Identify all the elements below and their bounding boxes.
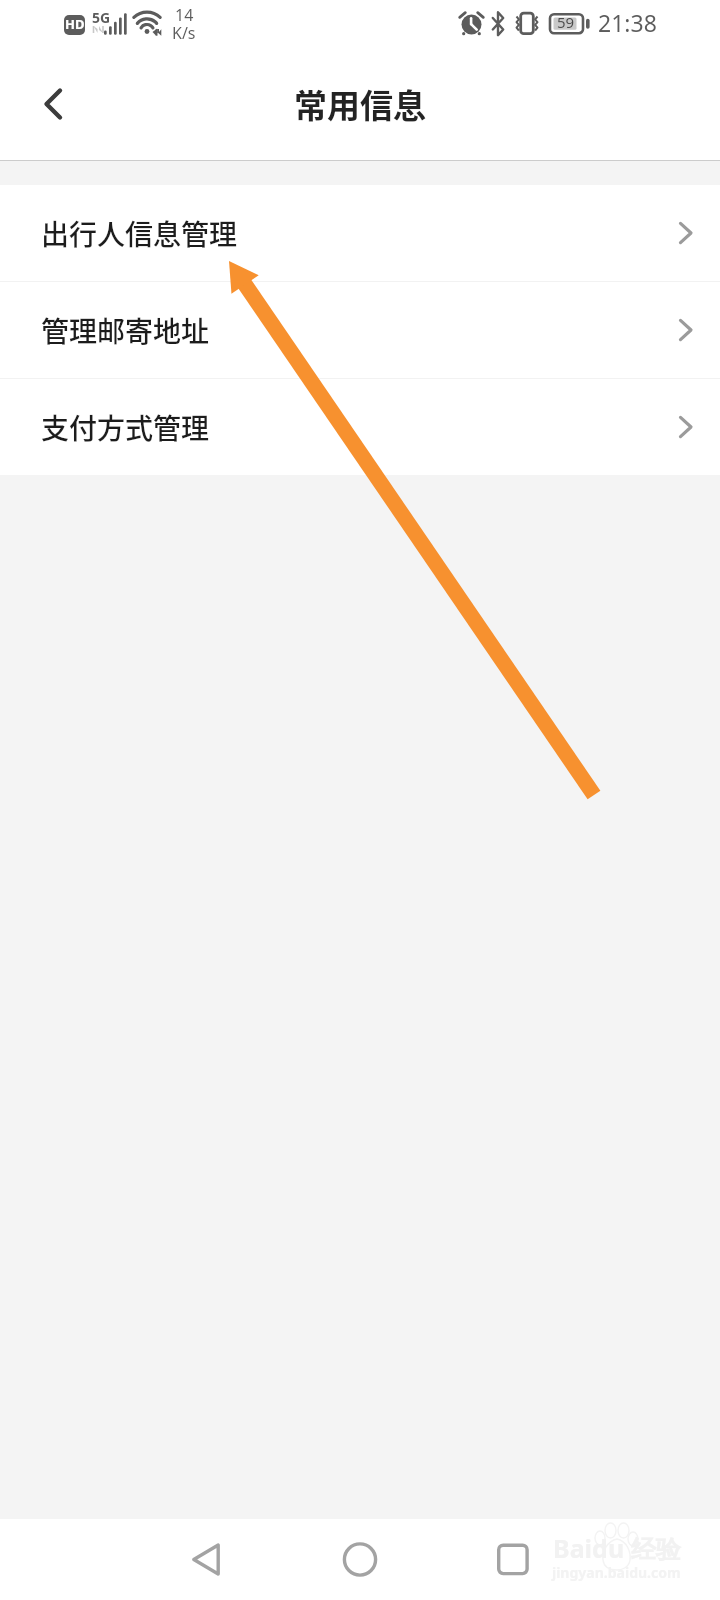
staticText: 常用信息 <box>294 80 426 128</box>
button[interactable]: 支付方式管理 <box>0 379 720 475</box>
staticText: 59 <box>557 12 575 32</box>
staticText: Baidu 经验 <box>553 1531 681 1565</box>
button[interactable]: Recent apps <box>472 1519 552 1600</box>
staticText: 支付方式管理 <box>41 407 210 448</box>
button[interactable]: 管理邮寄地址 <box>0 282 720 378</box>
staticText: 5G <box>92 8 111 27</box>
staticText: 21:38 <box>598 7 657 38</box>
button[interactable]: Home <box>320 1519 400 1600</box>
staticText: 出行人信息管理 <box>41 213 238 254</box>
staticText: 管理邮寄地址 <box>41 310 210 351</box>
button[interactable]: Back <box>0 62 88 150</box>
button[interactable]: 出行人信息管理 <box>0 185 720 281</box>
staticText: jingyan.baidu.com <box>552 1563 681 1582</box>
staticText: HD <box>65 15 85 33</box>
staticText: K/s <box>172 22 196 44</box>
button[interactable]: Back <box>166 1519 246 1600</box>
staticText: 14 <box>175 4 194 26</box>
